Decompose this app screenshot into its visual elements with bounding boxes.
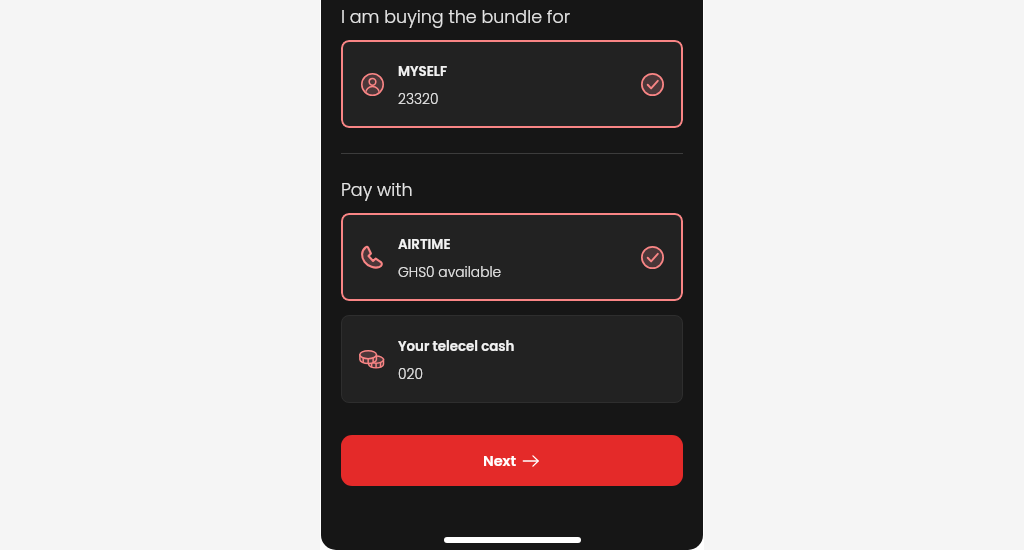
staticText: Pay with	[341, 178, 413, 203]
staticText: Your telecel cash	[398, 337, 515, 356]
staticText: 23320	[398, 90, 439, 109]
staticText: I am buying the bundle for	[341, 5, 571, 30]
staticText: GHS0 available	[398, 263, 502, 282]
button[interactable]: AIRTIME	[341, 213, 683, 301]
button[interactable]: Your telecel cash	[341, 315, 683, 403]
staticText: Next	[483, 451, 517, 471]
staticText: 020	[398, 365, 423, 384]
button[interactable]: MYSELF	[341, 40, 683, 128]
button[interactable]: Next	[341, 435, 683, 486]
other: Selected	[641, 246, 664, 269]
staticText: AIRTIME	[398, 235, 451, 254]
other: Selected	[641, 73, 664, 96]
staticText: MYSELF	[398, 62, 448, 81]
